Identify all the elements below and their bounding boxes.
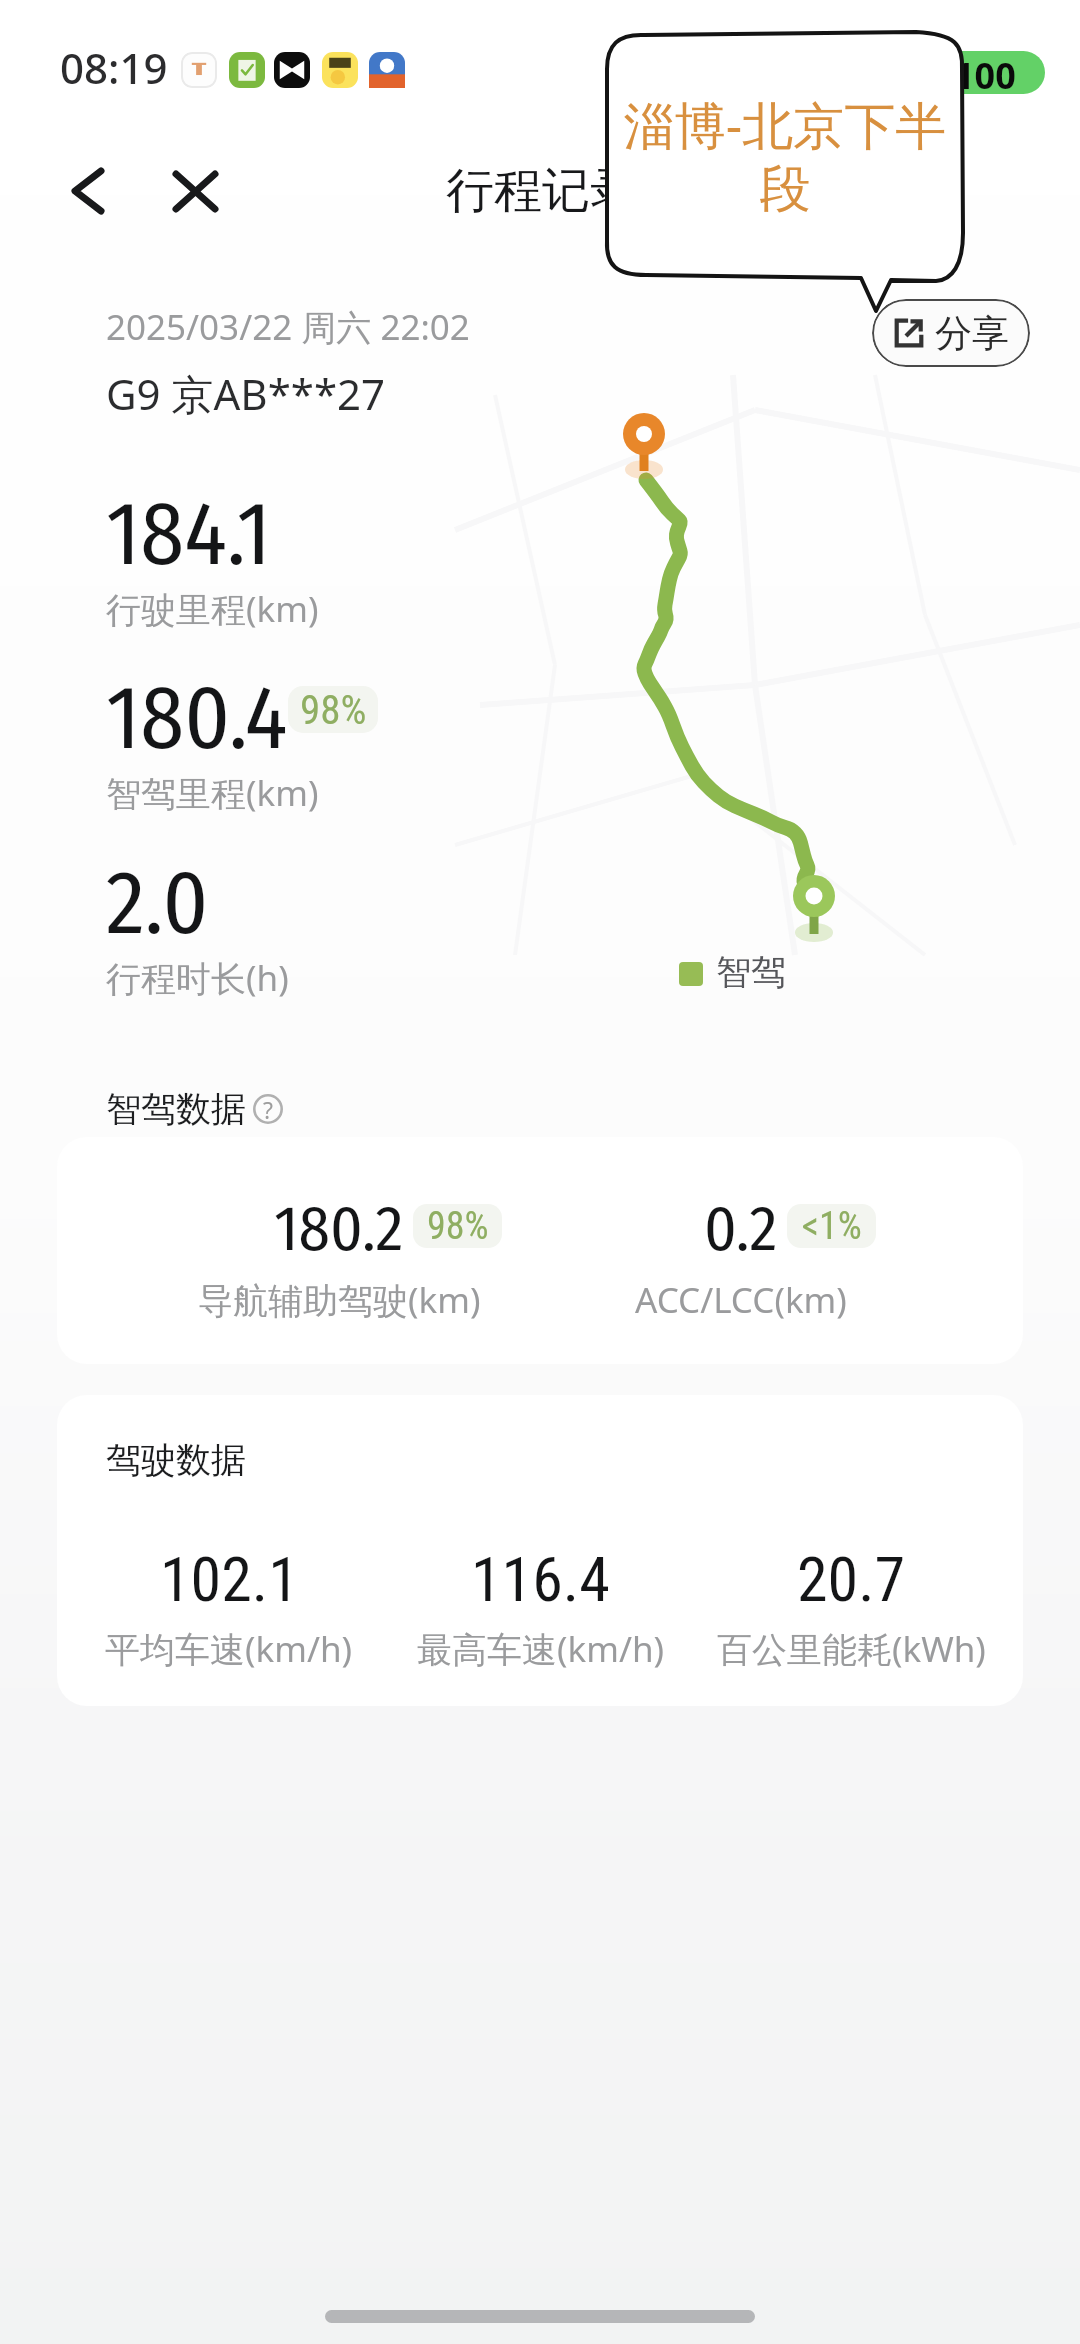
staticText: 行程记录 [446, 161, 638, 221]
staticText: 智驾里程(km) [106, 769, 319, 817]
button[interactable]: Share [872, 299, 1030, 367]
staticText: 08:19 [60, 39, 168, 96]
staticText: 184.1 [106, 482, 272, 588]
button[interactable]: Help [251, 1092, 285, 1126]
staticText: 淄博-北京下半段 [615, 89, 955, 221]
staticText: 最高车速(km/h) [417, 1625, 665, 1673]
staticText: 98% [300, 686, 367, 733]
staticText: 180.2 [274, 1191, 404, 1267]
staticText: 百公里能耗(kWh) [717, 1625, 986, 1673]
staticText: 2.0 [106, 851, 209, 957]
staticText: 导航辅助驾驶(km) [198, 1276, 481, 1324]
staticText: 2025/03/22 周六 22:02 [106, 303, 470, 351]
staticText: 20.7 [797, 1543, 906, 1616]
staticText: 驾驶数据 [106, 1438, 246, 1482]
staticText: 行驶里程(km) [106, 585, 319, 633]
staticText: 智驾 [716, 950, 786, 994]
staticText: ACC/LCC(km) [635, 1276, 847, 1324]
staticText: G9 京AB***27 [106, 365, 386, 422]
staticText: 116.4 [471, 1543, 610, 1616]
staticText: 智驾数据 [106, 1087, 246, 1131]
button[interactable]: Close [148, 144, 242, 238]
staticText: 102.1 [160, 1543, 299, 1616]
staticText: 0.2 [704, 1191, 778, 1267]
staticText: 分享 [935, 310, 1009, 357]
staticText: 平均车速(km/h) [105, 1625, 353, 1673]
staticText: 行程时长(h) [106, 954, 289, 1002]
staticText: <1% [802, 1204, 862, 1248]
staticText: 98% [427, 1204, 489, 1248]
staticText: 180.4 [106, 666, 288, 772]
button[interactable]: Back [41, 144, 135, 238]
staticText: ? [263, 1094, 273, 1125]
staticText: 100 [954, 51, 1016, 94]
